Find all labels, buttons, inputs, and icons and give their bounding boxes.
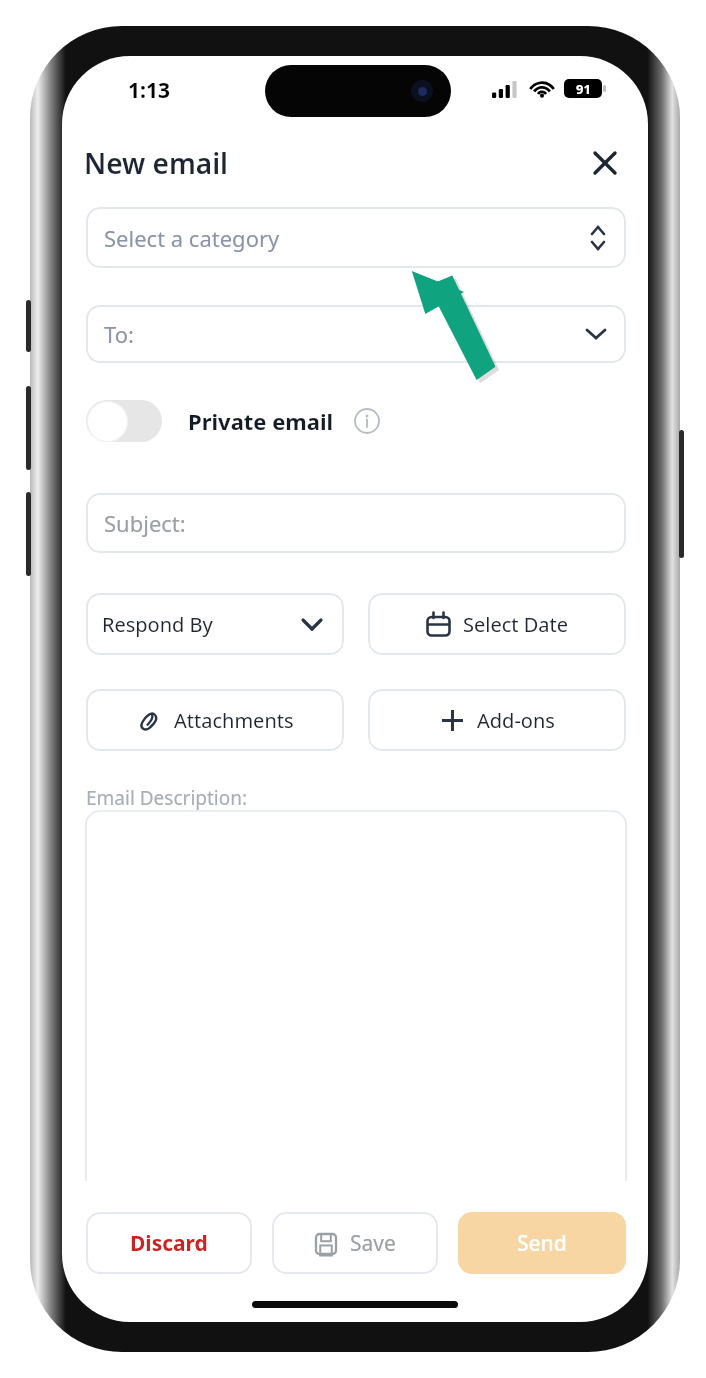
button[interactable]: Select a category <box>86 207 626 268</box>
staticText: Respond By <box>102 611 213 638</box>
staticText: 1:13 <box>128 76 170 105</box>
staticText: Send <box>517 1229 567 1258</box>
button[interactable]: Private email toggle <box>86 399 162 443</box>
staticText: Attachments <box>174 707 294 734</box>
staticText: New email <box>84 144 229 182</box>
button[interactable]: Send <box>458 1212 626 1274</box>
button[interactable]: Info <box>350 404 384 438</box>
staticText: 91 <box>576 80 591 98</box>
staticText: Save <box>350 1229 396 1258</box>
staticText: Select Date <box>463 611 569 638</box>
button[interactable]: Close <box>582 140 628 186</box>
staticText: Private email <box>188 406 334 436</box>
button[interactable]: Respond By <box>86 593 344 655</box>
staticText: To: <box>104 319 134 349</box>
staticText: Add-ons <box>477 707 555 734</box>
button[interactable]: Subject <box>86 493 626 553</box>
button[interactable]: Save <box>272 1212 438 1274</box>
staticText: Select a category <box>104 223 280 253</box>
button[interactable]: Discard <box>86 1212 252 1274</box>
button[interactable]: Attachments <box>86 689 344 751</box>
button[interactable]: To <box>86 305 626 363</box>
button[interactable]: Select Date <box>368 593 626 655</box>
staticText: Subject: <box>104 508 186 538</box>
staticText: Email Description: <box>86 785 248 811</box>
button[interactable]: Add-ons <box>368 689 626 751</box>
staticText: Discard <box>130 1229 208 1258</box>
